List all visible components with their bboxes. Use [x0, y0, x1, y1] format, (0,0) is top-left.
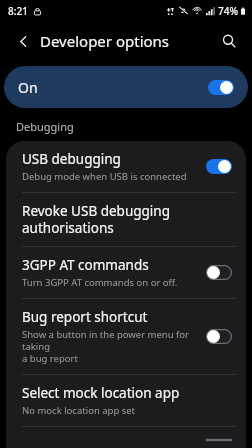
- staticText: Show a button in the power menu for taki…: [22, 328, 196, 365]
- button[interactable]: Bug report shortcut: [6, 299, 246, 374]
- staticText: Debugging: [16, 119, 74, 134]
- staticText: 8:21: [8, 4, 28, 18]
- button[interactable]: Search: [216, 28, 242, 54]
- button[interactable]: USB debugging toggle: [202, 155, 236, 178]
- staticText: 74%: [218, 4, 238, 18]
- button[interactable]: Bug report shortcut toggle: [202, 325, 236, 348]
- staticText: Bug report shortcut: [22, 308, 148, 326]
- staticText: Turn 3GPP AT commands on or off.: [22, 276, 178, 289]
- staticText: Debug mode when USB is connected: [22, 170, 187, 183]
- button[interactable]: USB debugging: [6, 141, 246, 192]
- staticText: No mock location app set: [22, 404, 136, 417]
- staticText: 3GPP AT commands: [22, 256, 149, 274]
- staticText: Developer options: [40, 31, 170, 51]
- button[interactable]: Revoke USB debugging authorisations: [6, 193, 246, 246]
- button[interactable]: Select mock location app: [6, 375, 246, 426]
- button[interactable]: Force full GNSS measurements: [6, 427, 246, 448]
- staticText: Select mock location app: [22, 384, 180, 402]
- button[interactable]: 3GPP AT commands toggle: [202, 261, 236, 284]
- button[interactable]: Force full GNSS measurements toggle: [202, 436, 236, 439]
- button[interactable]: 3GPP AT commands: [6, 247, 246, 298]
- staticText: On: [18, 78, 38, 97]
- button[interactable]: On: [4, 66, 248, 108]
- staticText: USB debugging: [22, 150, 121, 168]
- staticText: Revoke USB debugging authorisations: [22, 202, 170, 237]
- button[interactable]: Back: [10, 28, 36, 54]
